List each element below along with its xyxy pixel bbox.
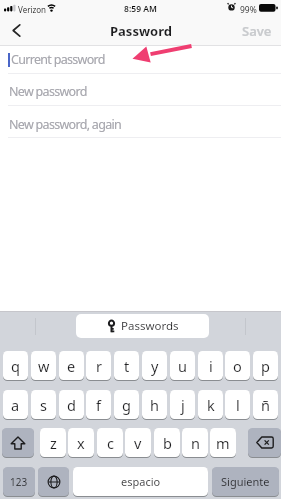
staticText: g	[122, 395, 131, 415]
button[interactable]: Passwords	[76, 314, 209, 338]
button[interactable]: Current password	[0, 46, 281, 73]
staticText: i	[209, 356, 213, 376]
button[interactable]: z	[40, 428, 66, 457]
button[interactable]	[4, 17, 28, 43]
staticText: a	[11, 395, 20, 415]
staticText: 123	[10, 475, 28, 489]
staticText: Siguiente	[221, 474, 270, 489]
button[interactable]: ñ	[253, 390, 278, 419]
button[interactable]: Save	[242, 22, 272, 40]
button[interactable]: New password, again	[0, 106, 281, 137]
staticText: h	[150, 395, 159, 415]
staticText: New password, again	[9, 116, 122, 133]
staticText: Verizon	[18, 4, 47, 15]
button[interactable]: g	[114, 390, 139, 419]
button[interactable]: f	[86, 390, 111, 419]
button[interactable]: r	[86, 351, 111, 380]
staticText: Password	[110, 22, 172, 40]
staticText: d	[67, 395, 76, 415]
button[interactable]: New password	[0, 74, 281, 105]
button[interactable]: w	[31, 351, 56, 380]
button[interactable]	[2, 428, 34, 457]
staticText: q	[11, 356, 20, 376]
staticText: s	[40, 395, 47, 415]
button[interactable]: Siguiente	[212, 467, 279, 496]
button[interactable]: j	[170, 390, 195, 419]
button[interactable]: k	[198, 390, 223, 419]
button[interactable]: espacio	[73, 467, 208, 496]
button[interactable]: h	[142, 390, 167, 419]
staticText: Passwords	[121, 318, 179, 334]
staticText: espacio	[121, 474, 161, 489]
staticText: f	[96, 395, 101, 415]
staticText: k	[207, 395, 215, 415]
button[interactable]: d	[59, 390, 84, 419]
staticText: z	[50, 433, 57, 453]
staticText: n	[191, 433, 200, 453]
button[interactable]: m	[210, 428, 236, 457]
staticText: b	[163, 433, 172, 453]
staticText: x	[77, 433, 85, 453]
button[interactable]: u	[170, 351, 195, 380]
staticText: j	[181, 395, 185, 415]
staticText: m	[216, 433, 230, 453]
staticText: 8:59 AM	[120, 3, 161, 15]
staticText: w	[38, 356, 50, 376]
staticText: Save	[242, 22, 272, 40]
button[interactable]: l	[225, 390, 250, 419]
staticText: t	[124, 356, 130, 376]
staticText: c	[107, 433, 114, 453]
button[interactable]: 123	[3, 467, 35, 496]
button[interactable]: q	[3, 351, 28, 380]
button[interactable]	[38, 467, 69, 496]
button[interactable]: o	[225, 351, 250, 380]
staticText: o	[233, 356, 242, 376]
staticText: e	[67, 356, 76, 376]
staticText: r	[96, 356, 102, 376]
button[interactable]: a	[3, 390, 28, 419]
button[interactable]: t	[114, 351, 139, 380]
button[interactable]: p	[253, 351, 278, 380]
button[interactable]: n	[182, 428, 208, 457]
button[interactable]: x	[68, 428, 94, 457]
button[interactable]: i	[198, 351, 223, 380]
button[interactable]: y	[142, 351, 167, 380]
staticText: New password	[9, 83, 87, 100]
staticText: l	[236, 395, 240, 415]
staticText: 99%	[240, 4, 257, 16]
button[interactable]: c	[97, 428, 123, 457]
button[interactable]: s	[31, 390, 56, 419]
staticText: y	[151, 356, 159, 376]
button[interactable]: b	[154, 428, 180, 457]
button[interactable]: v	[125, 428, 151, 457]
staticText: ñ	[261, 395, 270, 415]
button[interactable]: e	[59, 351, 84, 380]
staticText: v	[134, 433, 142, 453]
staticText: p	[261, 356, 270, 376]
button[interactable]	[248, 428, 281, 457]
staticText: u	[178, 356, 187, 376]
staticText: Current password	[11, 51, 105, 68]
